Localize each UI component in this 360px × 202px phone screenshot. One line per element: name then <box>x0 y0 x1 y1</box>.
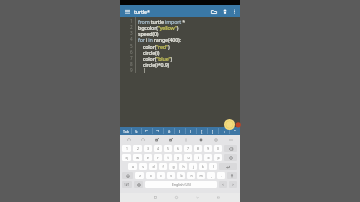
button[interactable]: ( <box>175 127 185 135</box>
button[interactable]: w <box>133 154 142 161</box>
button[interactable]: , <box>207 172 215 179</box>
button[interactable]: s <box>139 163 147 170</box>
staticText: color("red") <box>138 43 170 50</box>
button[interactable]: Menu <box>122 6 132 16</box>
staticText: circle(i) <box>138 49 160 56</box>
button[interactable]: Settings <box>208 135 223 144</box>
button[interactable]: 1 <box>122 145 131 152</box>
button[interactable]: ← <box>142 127 152 135</box>
button[interactable]: d <box>149 163 157 170</box>
button[interactable]: l <box>209 163 217 170</box>
staticText: l <box>213 164 214 169</box>
button[interactable]: : <box>219 127 229 135</box>
staticText: v <box>170 173 172 178</box>
button[interactable]: \t <box>132 127 141 135</box>
staticText: ← <box>145 129 149 133</box>
button[interactable]: English (US) <box>145 181 217 188</box>
button[interactable]: g <box>169 163 177 170</box>
button[interactable]: Cut <box>150 135 164 144</box>
button[interactable]: ) <box>186 127 196 135</box>
button[interactable]: Emoji <box>224 154 237 161</box>
button[interactable]: !#1 <box>122 181 132 188</box>
staticText: i <box>198 155 199 160</box>
button[interactable]: p <box>214 154 222 161</box>
button[interactable]: 6 <box>174 145 182 152</box>
staticText: z <box>139 173 141 178</box>
button[interactable]: u <box>184 154 192 161</box>
button[interactable]: Undo <box>122 135 136 144</box>
button[interactable]: Tab <box>120 127 131 135</box>
staticText: s <box>142 164 144 169</box>
button[interactable]: # <box>164 127 174 135</box>
button[interactable]: Language <box>134 181 143 188</box>
button[interactable]: i <box>194 154 202 161</box>
button[interactable]: > <box>229 181 237 188</box>
staticText: 7 <box>130 55 133 61</box>
button[interactable]: Backspace <box>224 145 237 152</box>
button[interactable]: Voice input <box>227 172 237 179</box>
staticText: r <box>157 155 159 160</box>
button[interactable]: a <box>128 163 137 170</box>
button[interactable]: ] <box>208 127 218 135</box>
staticText: ) <box>190 129 192 134</box>
staticText: [ <box>201 129 203 134</box>
button[interactable]: y <box>174 154 182 161</box>
button[interactable]: x <box>146 172 155 179</box>
button[interactable]: Copy <box>164 135 178 144</box>
button[interactable]: t <box>164 154 172 161</box>
staticText: bgcolor("yellow") <box>138 24 179 31</box>
button[interactable]: r <box>154 154 162 161</box>
button[interactable]: z <box>135 172 144 179</box>
button[interactable]: n <box>187 172 195 179</box>
staticText: 6 <box>177 146 179 151</box>
button[interactable]: → <box>153 127 163 135</box>
button[interactable]: Recent apps <box>145 193 166 202</box>
button[interactable]: 4 <box>154 145 162 152</box>
button[interactable]: Sticker <box>193 135 208 144</box>
staticText: Tab <box>123 129 129 134</box>
staticText: c <box>160 173 162 178</box>
staticText: \t <box>135 129 138 134</box>
staticText: h <box>182 164 185 169</box>
button[interactable]: Shift <box>122 172 133 179</box>
button[interactable]: f <box>159 163 167 170</box>
staticText: " <box>234 129 236 134</box>
button[interactable]: Back <box>208 193 229 202</box>
button[interactable]: m <box>197 172 205 179</box>
button[interactable]: [ <box>197 127 207 135</box>
button[interactable]: " <box>230 127 240 135</box>
button[interactable]: j <box>189 163 197 170</box>
staticText: 4 <box>130 36 133 42</box>
button[interactable]: c <box>157 172 165 179</box>
staticText: color("blue") <box>138 55 172 62</box>
button[interactable]: e <box>144 154 152 161</box>
button[interactable]: v <box>167 172 175 179</box>
button[interactable]: q <box>122 154 131 161</box>
button[interactable]: h <box>179 163 187 170</box>
staticText: g <box>172 164 175 169</box>
button[interactable]: 0 <box>214 145 222 152</box>
button[interactable]: Paste <box>178 135 193 144</box>
button[interactable]: Redo <box>136 135 150 144</box>
button[interactable]: Enter <box>219 163 237 170</box>
button[interactable]: o <box>204 154 212 161</box>
button[interactable]: 7 <box>184 145 192 152</box>
staticText: 7 <box>187 146 189 151</box>
button[interactable]: 3 <box>144 145 152 152</box>
button[interactable]: . <box>217 172 225 179</box>
button[interactable]: b <box>177 172 185 179</box>
button[interactable]: Run <box>219 6 230 17</box>
button[interactable]: Run program <box>224 119 235 130</box>
button[interactable]: k <box>199 163 207 170</box>
button[interactable]: 2 <box>133 145 142 152</box>
button[interactable]: 9 <box>204 145 212 152</box>
button[interactable]: Collapse keyboard <box>223 135 238 144</box>
button[interactable]: 5 <box>164 145 172 152</box>
button[interactable]: More options <box>230 7 239 16</box>
button[interactable]: 8 <box>194 145 202 152</box>
button[interactable]: Open file <box>208 6 219 17</box>
button[interactable]: Home <box>166 193 187 202</box>
button[interactable]: < <box>219 181 227 188</box>
